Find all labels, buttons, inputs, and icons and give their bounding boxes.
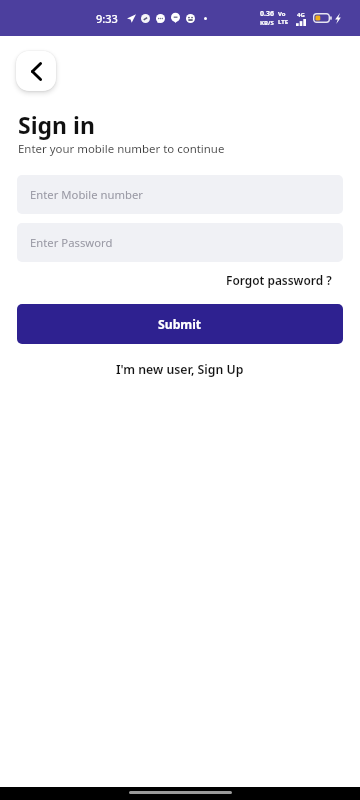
staticText: Sign in xyxy=(18,109,95,140)
button[interactable]: Back xyxy=(16,51,56,91)
button[interactable]: Enter Password xyxy=(17,223,343,262)
staticText: 0.36 xyxy=(260,9,274,19)
staticText: Enter your mobile number to continue xyxy=(18,141,225,157)
staticText: LTE xyxy=(278,18,289,26)
staticText: 9:33 xyxy=(96,11,118,26)
button[interactable]: I'm new user, Sign Up xyxy=(116,361,244,378)
button[interactable]: Forgot password ? xyxy=(226,272,332,288)
staticText: 4G xyxy=(297,11,305,19)
staticText: Vo xyxy=(278,10,286,18)
button[interactable]: Enter Mobile number xyxy=(17,175,343,214)
staticText: Submit xyxy=(158,316,202,333)
button[interactable]: Submit xyxy=(17,304,343,344)
staticText: Enter Mobile number xyxy=(30,187,143,202)
staticText: KB/S xyxy=(260,19,274,27)
staticText: Enter Password xyxy=(30,235,113,250)
